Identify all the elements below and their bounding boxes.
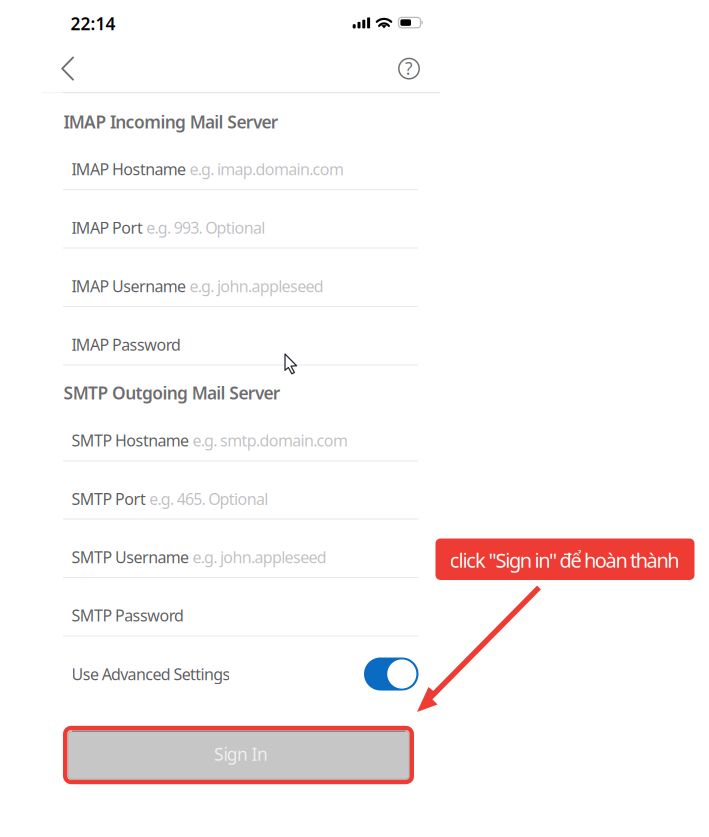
staticText: 22:14 — [70, 12, 115, 35]
button[interactable]: SMTP Password — [0, 0, 709, 837]
button[interactable]: Sign In — [0, 0, 709, 837]
button[interactable]: SMTP Username — [0, 0, 709, 837]
button[interactable]: IMAP Hostname — [0, 0, 709, 837]
staticText: e.g. john.appleseed — [186, 275, 324, 297]
staticText: SMTP Outgoing Mail Server — [63, 381, 281, 404]
button[interactable]: Back — [0, 0, 709, 837]
staticText: SMTP Username — [71, 546, 189, 568]
staticText: Sign In — [214, 742, 268, 765]
staticText: IMAP Password — [71, 334, 181, 355]
button[interactable]: IMAP Password — [0, 0, 709, 837]
staticText: IMAP Hostname — [71, 158, 186, 180]
staticText: SMTP Port — [71, 488, 146, 509]
button[interactable]: SMTP Hostname — [0, 0, 709, 837]
staticText: e.g. imap.domain.com — [186, 158, 344, 180]
staticText: ? — [405, 57, 413, 80]
staticText: e.g. john.appleseed — [189, 546, 327, 568]
staticText: e.g. 993. Optional — [143, 217, 265, 238]
button[interactable]: Help — [0, 0, 709, 837]
staticText: e.g. smtp.domain.com — [189, 430, 348, 451]
staticText: e.g. 465. Optional — [146, 488, 268, 509]
button[interactable]: SMTP Port — [0, 0, 709, 837]
staticText: IMAP Username — [71, 275, 186, 297]
staticText: SMTP Hostname — [71, 430, 189, 451]
staticText: Use Advanced Settings — [71, 663, 230, 685]
staticText: IMAP Incoming Mail Server — [63, 110, 279, 133]
button[interactable]: IMAP Port — [0, 0, 709, 837]
button[interactable]: Use Advanced Settings — [0, 0, 709, 837]
staticText: SMTP Password — [71, 605, 184, 626]
staticText: click "Sign in" để hoàn thành — [450, 547, 679, 573]
staticText: IMAP Port — [71, 217, 143, 238]
button[interactable]: IMAP Username — [0, 0, 709, 837]
